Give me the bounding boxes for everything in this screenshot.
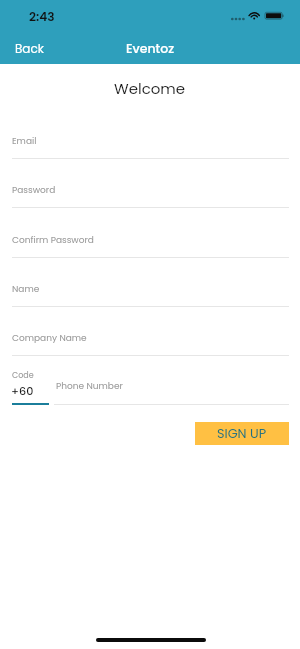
button[interactable]: Phone Number bbox=[54, 374, 288, 404]
button[interactable]: Name bbox=[0, 276, 300, 306]
other: Signal, Wi-Fi and battery status bbox=[228, 6, 290, 24]
staticText: Name bbox=[12, 283, 40, 296]
staticText: +60 bbox=[11, 383, 34, 399]
button[interactable]: SIGN UP bbox=[195, 422, 289, 445]
staticText: SIGN UP bbox=[217, 425, 267, 443]
staticText: Phone Number bbox=[56, 380, 123, 393]
staticText: Code bbox=[12, 370, 34, 381]
button[interactable]: Code bbox=[0, 366, 54, 404]
staticText: Password bbox=[12, 184, 56, 197]
button[interactable]: Email bbox=[0, 128, 300, 158]
button[interactable]: Confirm Password bbox=[0, 227, 300, 257]
button[interactable]: Company Name bbox=[0, 325, 300, 355]
staticText: 2:43 bbox=[29, 8, 55, 25]
staticText: Eventoz bbox=[126, 40, 175, 57]
button[interactable]: Back bbox=[5, 35, 53, 59]
staticText: Email bbox=[12, 135, 37, 148]
button[interactable]: Password bbox=[0, 177, 300, 207]
staticText: Company Name bbox=[12, 332, 87, 345]
staticText: Welcome bbox=[114, 78, 186, 99]
staticText: Back bbox=[15, 40, 44, 57]
staticText: Confirm Password bbox=[12, 234, 94, 247]
